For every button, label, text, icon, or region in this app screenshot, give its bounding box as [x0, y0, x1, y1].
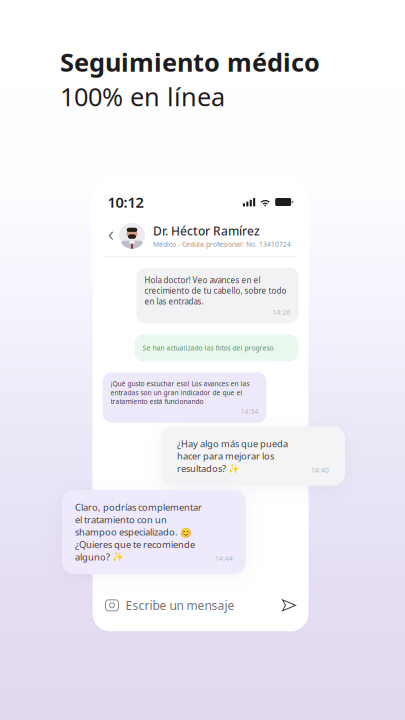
staticText: 14:34	[240, 407, 258, 416]
button[interactable]: Camera	[105, 600, 118, 611]
staticText: 14:44	[215, 554, 233, 563]
button[interactable]: Back	[103, 228, 119, 244]
staticText: Hola doctor! Veo avances en el crecimien…	[144, 275, 286, 307]
button[interactable]: Send	[282, 600, 295, 611]
staticText: Escribe un mensaje	[125, 597, 234, 613]
staticText: ¡Qué gusto escuchar eso! Los avances en …	[110, 379, 249, 406]
staticText: Médico - Cédula profesional: No. 1341072…	[153, 240, 291, 249]
staticText: ¿Hay algo más que pueda hacer para mejor…	[177, 437, 288, 475]
staticText: Dr. Héctor Ramírez	[153, 223, 260, 239]
staticText: 14:26	[272, 308, 290, 316]
staticText: 100% en línea	[60, 80, 225, 113]
staticText: Claro, podrías complementar el tratamien…	[75, 501, 202, 563]
staticText: Seguimiento médico	[60, 45, 320, 79]
staticText: 14:40	[311, 466, 329, 475]
staticText: 10:12	[107, 192, 143, 212]
staticText: Se han actualizado las fotos del progres…	[142, 343, 273, 352]
